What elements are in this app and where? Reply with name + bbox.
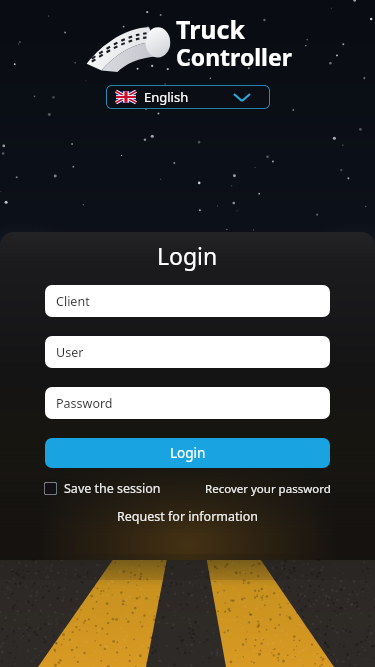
staticText: Controller: [176, 41, 292, 72]
staticText: Login: [170, 444, 206, 462]
button[interactable]: Login: [45, 438, 330, 468]
staticText: Client: [56, 293, 90, 310]
staticText: English: [144, 88, 189, 106]
button[interactable]: Recover your password: [205, 481, 331, 497]
staticText: Truck: [176, 12, 246, 46]
button[interactable]: English: [106, 85, 270, 109]
staticText: Password: [56, 395, 113, 412]
button[interactable]: Save the session: [44, 480, 161, 497]
button[interactable]: User: [45, 336, 330, 368]
staticText: Login: [157, 240, 218, 271]
button[interactable]: Client: [45, 285, 330, 317]
staticText: User: [56, 344, 84, 361]
button[interactable]: Request for information: [117, 508, 259, 525]
staticText: Save the session: [64, 480, 161, 497]
button[interactable]: Password: [45, 387, 330, 419]
